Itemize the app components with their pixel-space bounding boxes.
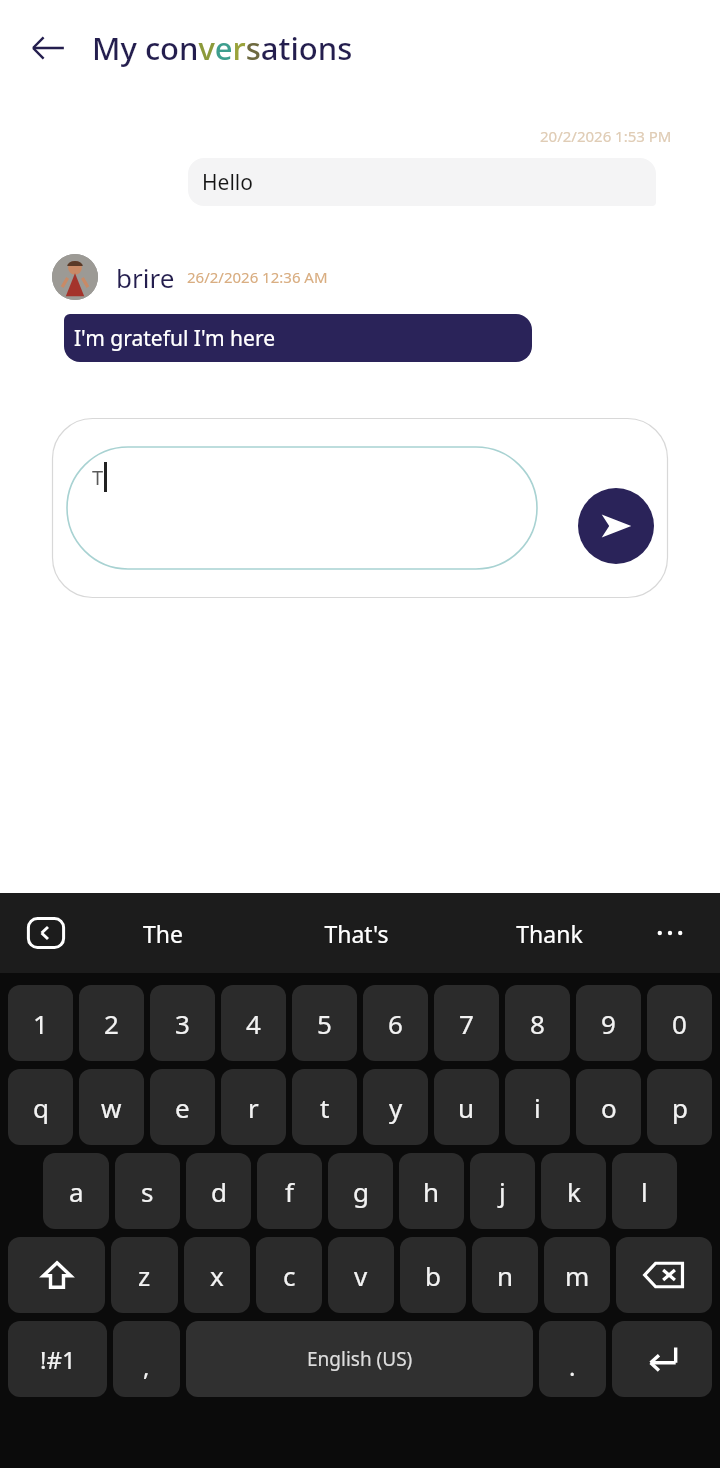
staticText: The xyxy=(143,918,183,949)
staticText: x xyxy=(210,1258,224,1293)
button[interactable]: 1 xyxy=(8,985,73,1061)
staticText: f xyxy=(285,1174,294,1209)
staticText: g xyxy=(353,1174,369,1209)
staticText: English (US) xyxy=(307,1346,413,1372)
staticText: Thank xyxy=(516,918,583,949)
button[interactable]: k xyxy=(541,1153,606,1229)
button[interactable]: 0 xyxy=(647,985,712,1061)
staticText: z xyxy=(138,1258,151,1293)
staticText: 7 xyxy=(459,1006,474,1041)
button[interactable]: d xyxy=(186,1153,251,1229)
staticText: brire xyxy=(116,260,175,295)
staticText: 20/2/2026 1:53 PM xyxy=(540,126,672,146)
staticText: t xyxy=(320,1090,330,1125)
button[interactable]: 6 xyxy=(363,985,428,1061)
button[interactable]: Back xyxy=(14,14,82,82)
staticText: 0 xyxy=(672,1006,687,1041)
staticText: l xyxy=(641,1174,648,1209)
button[interactable]: , xyxy=(113,1321,180,1397)
staticText: !#1 xyxy=(40,1343,76,1376)
button[interactable]: 4 xyxy=(221,985,286,1061)
staticText: q xyxy=(33,1090,49,1125)
button[interactable]: s xyxy=(115,1153,180,1229)
staticText: 3 xyxy=(175,1006,190,1041)
staticText: b xyxy=(425,1258,441,1293)
button[interactable]: a xyxy=(43,1153,109,1229)
button[interactable]: T xyxy=(66,446,538,570)
button[interactable] xyxy=(52,254,98,300)
staticText: d xyxy=(211,1174,227,1209)
button[interactable]: 2 xyxy=(79,985,144,1061)
staticText: 6 xyxy=(388,1006,403,1041)
staticText: h xyxy=(423,1174,440,1209)
button[interactable]: f xyxy=(257,1153,322,1229)
button[interactable]: Thank xyxy=(453,893,646,973)
button[interactable]: Previous xyxy=(26,913,66,953)
button[interactable]: 3 xyxy=(150,985,215,1061)
staticText: a xyxy=(69,1174,84,1209)
button[interactable]: . xyxy=(539,1321,606,1397)
button[interactable]: m xyxy=(544,1237,610,1313)
button[interactable]: I'm grateful I'm here xyxy=(64,314,532,362)
staticText: 8 xyxy=(530,1006,545,1041)
button[interactable]: n xyxy=(472,1237,538,1313)
button[interactable]: That's xyxy=(260,893,453,973)
button[interactable]: o xyxy=(576,1069,641,1145)
staticText: , xyxy=(143,1350,150,1383)
staticText: i xyxy=(534,1090,541,1125)
button[interactable]: c xyxy=(256,1237,322,1313)
button[interactable]: The xyxy=(66,893,260,973)
button[interactable]: Shift xyxy=(8,1237,105,1313)
staticText: j xyxy=(499,1174,506,1209)
button[interactable]: h xyxy=(399,1153,464,1229)
staticText: w xyxy=(101,1090,122,1125)
button[interactable]: y xyxy=(363,1069,428,1145)
staticText: 1 xyxy=(33,1006,48,1041)
staticText: 5 xyxy=(317,1006,332,1041)
button[interactable]: Enter xyxy=(612,1321,712,1397)
staticText: 26/2/2026 12:36 AM xyxy=(187,267,328,287)
staticText: n xyxy=(497,1258,514,1293)
button[interactable]: 7 xyxy=(434,985,499,1061)
button[interactable]: z xyxy=(111,1237,178,1313)
button[interactable]: j xyxy=(470,1153,535,1229)
button[interactable]: e xyxy=(150,1069,215,1145)
button[interactable]: p xyxy=(647,1069,712,1145)
button[interactable]: r xyxy=(221,1069,286,1145)
button[interactable]: g xyxy=(328,1153,393,1229)
button[interactable]: English (US) xyxy=(186,1321,533,1397)
button[interactable]: 8 xyxy=(505,985,570,1061)
button[interactable]: b xyxy=(400,1237,466,1313)
staticText: v xyxy=(354,1258,368,1293)
button[interactable]: l xyxy=(612,1153,677,1229)
button[interactable]: w xyxy=(79,1069,144,1145)
button[interactable]: 9 xyxy=(576,985,641,1061)
staticText: u xyxy=(458,1090,475,1125)
staticText: T xyxy=(92,464,104,491)
staticText: 4 xyxy=(246,1006,261,1041)
button[interactable]: i xyxy=(505,1069,570,1145)
button[interactable]: 5 xyxy=(292,985,357,1061)
staticText: c xyxy=(283,1258,296,1293)
staticText: 2 xyxy=(104,1006,119,1041)
staticText: I'm grateful I'm here xyxy=(74,324,275,353)
button[interactable]: v xyxy=(328,1237,394,1313)
staticText: r xyxy=(248,1090,259,1125)
staticText: k xyxy=(567,1174,581,1209)
staticText: p xyxy=(672,1090,688,1125)
button[interactable]: !#1 xyxy=(8,1321,107,1397)
button[interactable]: Send xyxy=(578,488,654,564)
button[interactable]: More options xyxy=(646,909,694,957)
button[interactable]: t xyxy=(292,1069,357,1145)
button[interactable]: x xyxy=(184,1237,250,1313)
staticText: 9 xyxy=(601,1006,616,1041)
button[interactable]: Backspace xyxy=(616,1237,712,1313)
button[interactable]: q xyxy=(8,1069,73,1145)
button[interactable]: u xyxy=(434,1069,499,1145)
staticText: Hello xyxy=(202,168,253,197)
staticText: That's xyxy=(324,918,389,949)
staticText: m xyxy=(565,1258,590,1293)
button[interactable]: Hello xyxy=(188,158,656,206)
staticText: y xyxy=(389,1090,403,1125)
staticText: s xyxy=(141,1174,154,1209)
